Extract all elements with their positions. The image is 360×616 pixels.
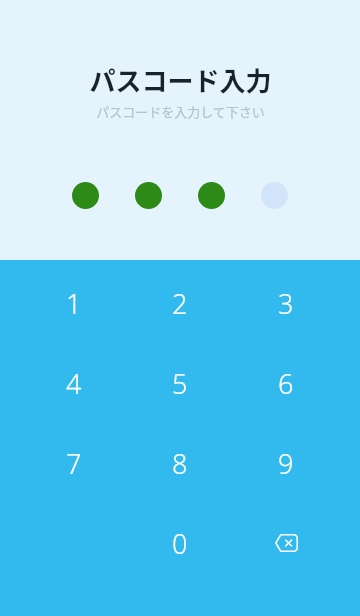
staticText: 8 [172, 445, 188, 482]
button[interactable]: Backspace [233, 503, 339, 583]
staticText: 9 [278, 445, 294, 482]
button[interactable]: 3 [233, 263, 339, 343]
staticText: 5 [172, 365, 188, 402]
button[interactable]: 5 [127, 343, 233, 423]
button[interactable]: 8 [127, 423, 233, 503]
button[interactable]: 4 [21, 343, 127, 423]
staticText: 6 [278, 365, 294, 402]
staticText: 2 [172, 285, 188, 322]
staticText: 4 [66, 365, 82, 402]
staticText: パスコードを入力して下さい [96, 102, 265, 121]
button[interactable]: 2 [127, 263, 233, 343]
button[interactable]: 7 [21, 423, 127, 503]
button[interactable]: 1 [21, 263, 127, 343]
staticText: 1 [66, 285, 82, 322]
staticText: 3 [278, 285, 294, 322]
button[interactable]: 9 [233, 423, 339, 503]
staticText: 0 [172, 525, 188, 562]
button[interactable]: 6 [233, 343, 339, 423]
staticText: 7 [66, 445, 82, 482]
staticText: パスコード入力 [89, 61, 272, 99]
button[interactable]: 0 [127, 503, 233, 583]
